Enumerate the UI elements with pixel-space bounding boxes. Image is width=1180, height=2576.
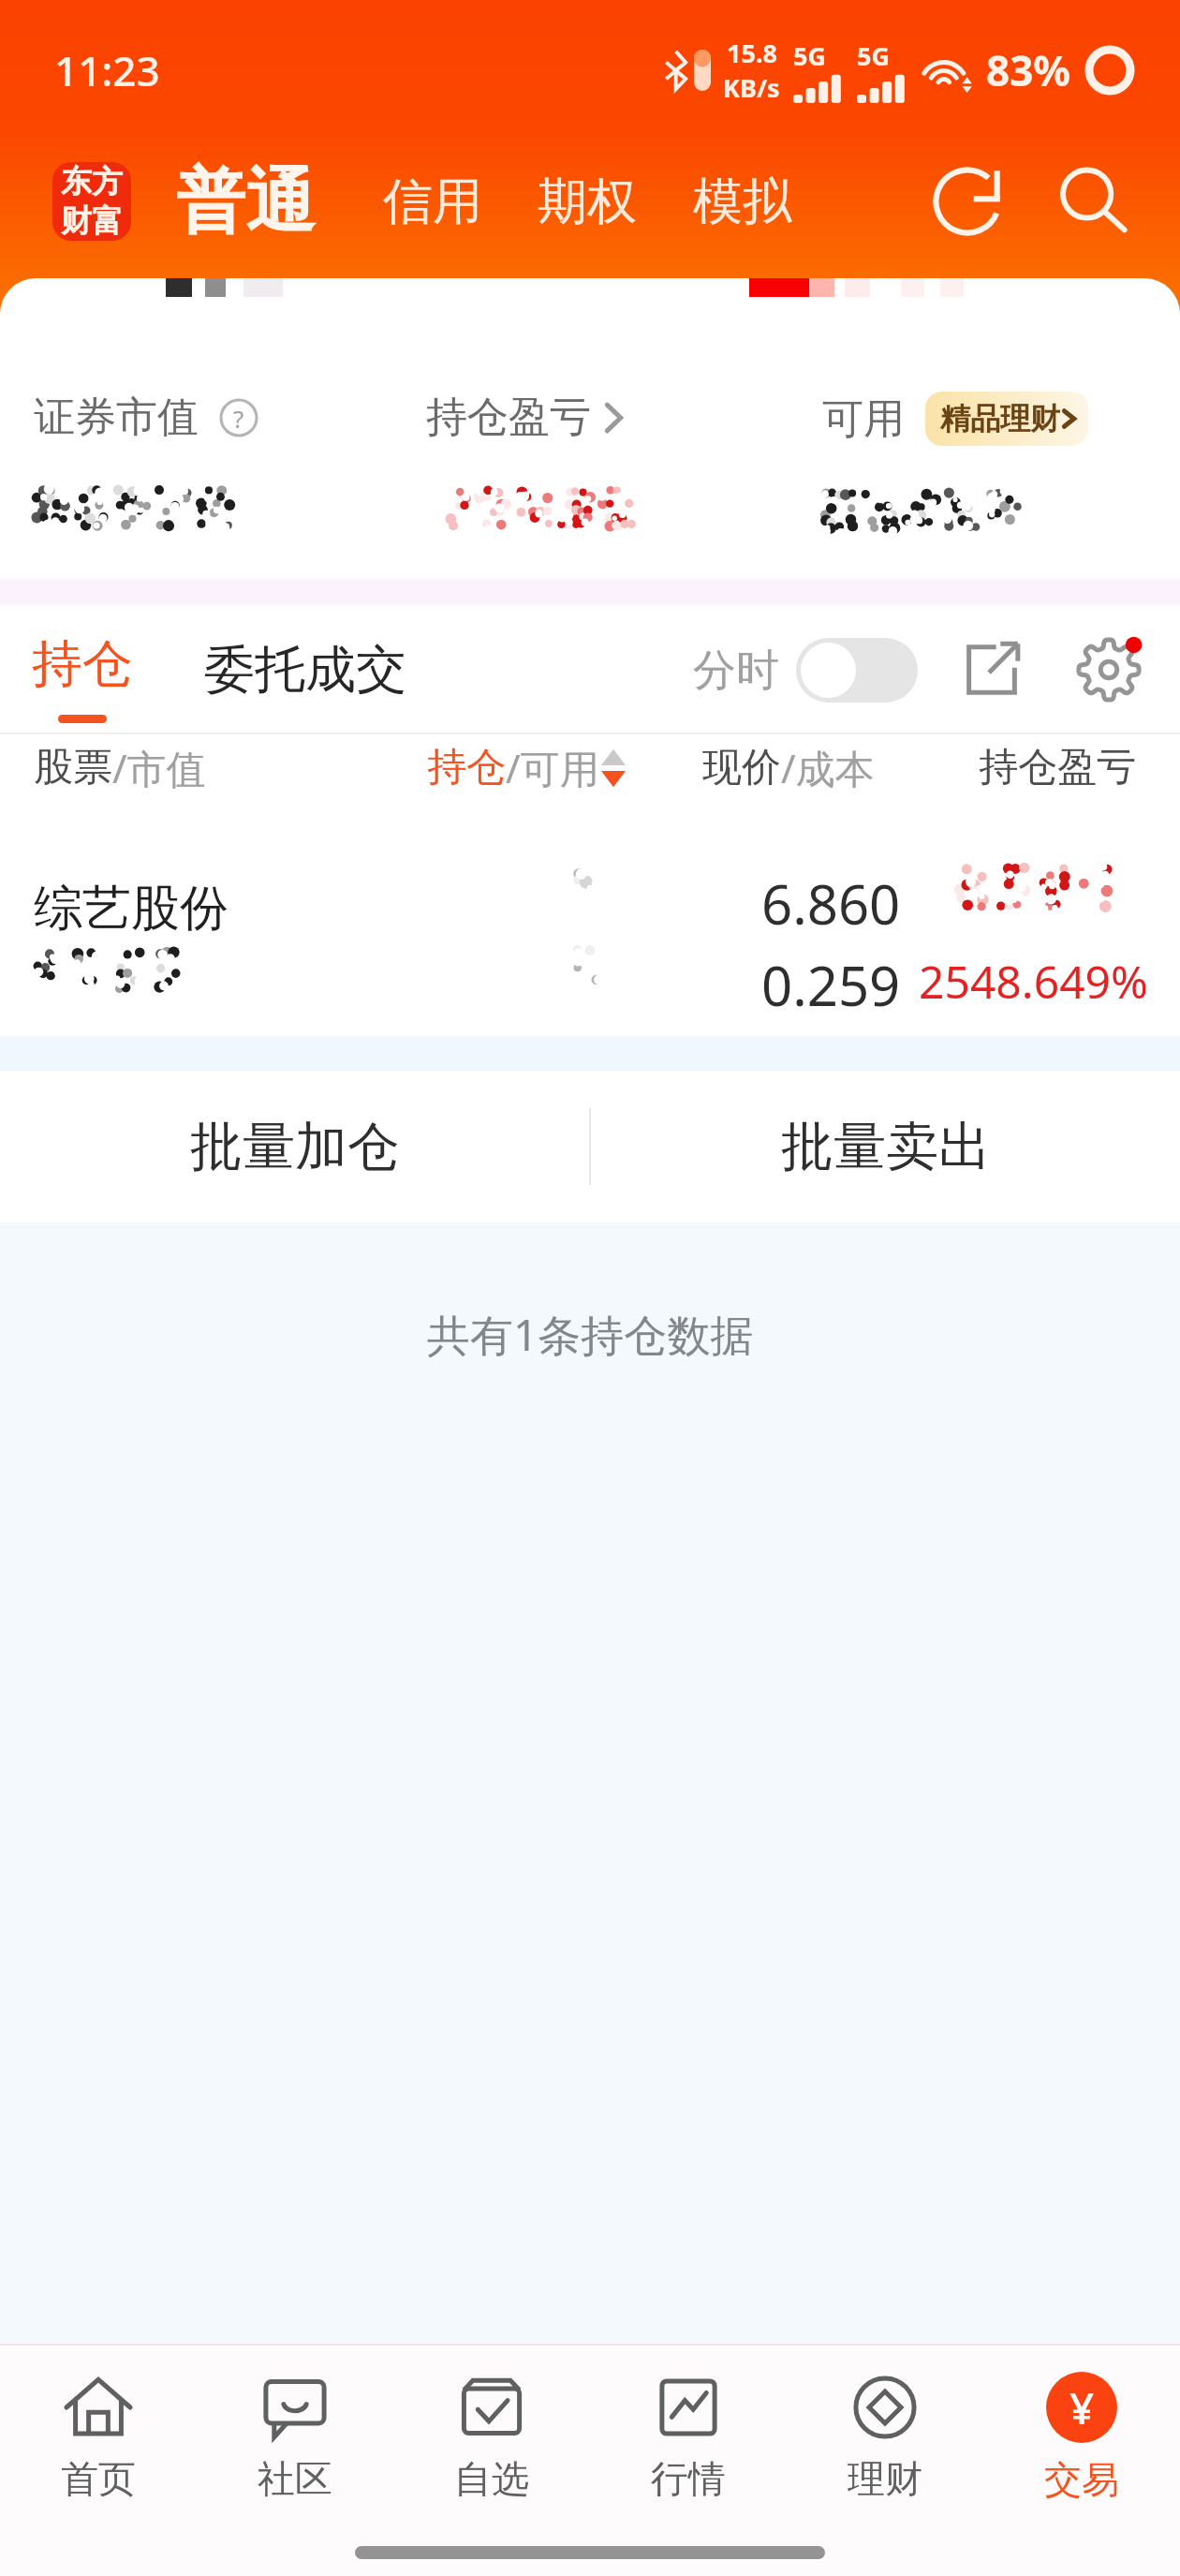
button[interactable]: 期权 xyxy=(538,170,637,233)
staticText: 5G xyxy=(857,38,890,73)
button[interactable]: 东方 xyxy=(52,162,131,241)
staticText: 现价 xyxy=(702,743,781,792)
staticText: 15.8 xyxy=(727,36,777,70)
button[interactable]: Share xyxy=(959,637,1025,703)
button[interactable]: Help xyxy=(219,398,258,437)
staticText: 持仓盈亏 xyxy=(979,743,1136,792)
staticText: 可用 xyxy=(822,393,905,445)
staticText: /成本 xyxy=(781,741,875,794)
staticText: /可用 xyxy=(506,741,599,794)
button[interactable]: 自选 xyxy=(393,2346,590,2529)
button[interactable]: 综艺股份 xyxy=(0,800,1180,1036)
staticText: 2548.649% xyxy=(919,951,1148,1012)
button[interactable]: 精品理财 xyxy=(925,392,1088,446)
staticText: 精品理财 xyxy=(940,400,1060,437)
button[interactable]: 持仓盈亏 xyxy=(426,392,625,443)
staticText: 行情 xyxy=(651,2455,726,2502)
staticText: KB/s xyxy=(723,70,780,105)
staticText: 批量卖出 xyxy=(781,1114,991,1180)
staticText: 普通 xyxy=(176,158,315,245)
staticText: 6.860 xyxy=(761,866,901,940)
staticText: 自选 xyxy=(454,2455,529,2502)
staticText: ¥ xyxy=(1069,2378,1095,2437)
button[interactable]: 行情 xyxy=(590,2346,787,2529)
staticText: 股票 xyxy=(34,743,112,792)
staticText: 财富 xyxy=(61,201,123,241)
staticText: 理财 xyxy=(848,2455,922,2502)
button[interactable]: 首页 xyxy=(0,2346,197,2529)
button[interactable]: Search xyxy=(1051,159,1135,244)
staticText: 委托成交 xyxy=(204,638,406,702)
staticText: 东方 xyxy=(61,162,123,201)
staticText: 0.259 xyxy=(761,948,901,1022)
staticText: 批量加仓 xyxy=(190,1114,400,1180)
staticText: 信用 xyxy=(383,170,482,233)
button[interactable]: 分时 xyxy=(693,638,918,703)
staticText: 模拟 xyxy=(693,170,792,233)
staticText: 期权 xyxy=(538,170,637,233)
button[interactable]: 模拟 xyxy=(693,170,792,233)
staticText: 83% xyxy=(986,42,1071,98)
staticText: ? xyxy=(233,402,244,435)
staticText: 社区 xyxy=(258,2455,332,2502)
button[interactable]: 理财 xyxy=(787,2346,983,2529)
staticText: 共有1条持仓数据 xyxy=(427,1305,754,1364)
staticText: 首页 xyxy=(61,2455,136,2502)
button[interactable]: 持仓 xyxy=(32,617,133,723)
button[interactable]: 普通 xyxy=(176,158,315,245)
staticText: 持仓 xyxy=(427,743,506,792)
staticText: 5G xyxy=(793,38,826,73)
button[interactable]: Refresh xyxy=(929,159,1013,244)
button[interactable]: 批量加仓 xyxy=(0,1071,589,1222)
staticText: /市值 xyxy=(112,741,206,794)
button[interactable]: 信用 xyxy=(383,170,482,233)
staticText: 持仓盈亏 xyxy=(426,392,591,443)
button[interactable]: Settings xyxy=(1075,636,1143,703)
staticText: 11:23 xyxy=(54,42,160,98)
staticText: 综艺股份 xyxy=(34,878,229,940)
button[interactable]: 委托成交 xyxy=(204,638,406,702)
staticText: 证券市值 xyxy=(34,392,199,443)
staticText: 分时 xyxy=(693,644,779,698)
button[interactable]: 批量卖出 xyxy=(591,1071,1180,1222)
button[interactable]: ¥ xyxy=(983,2346,1180,2529)
staticText: 持仓 xyxy=(32,632,133,696)
button[interactable]: 社区 xyxy=(197,2346,393,2529)
staticText: 交易 xyxy=(1044,2456,1119,2503)
